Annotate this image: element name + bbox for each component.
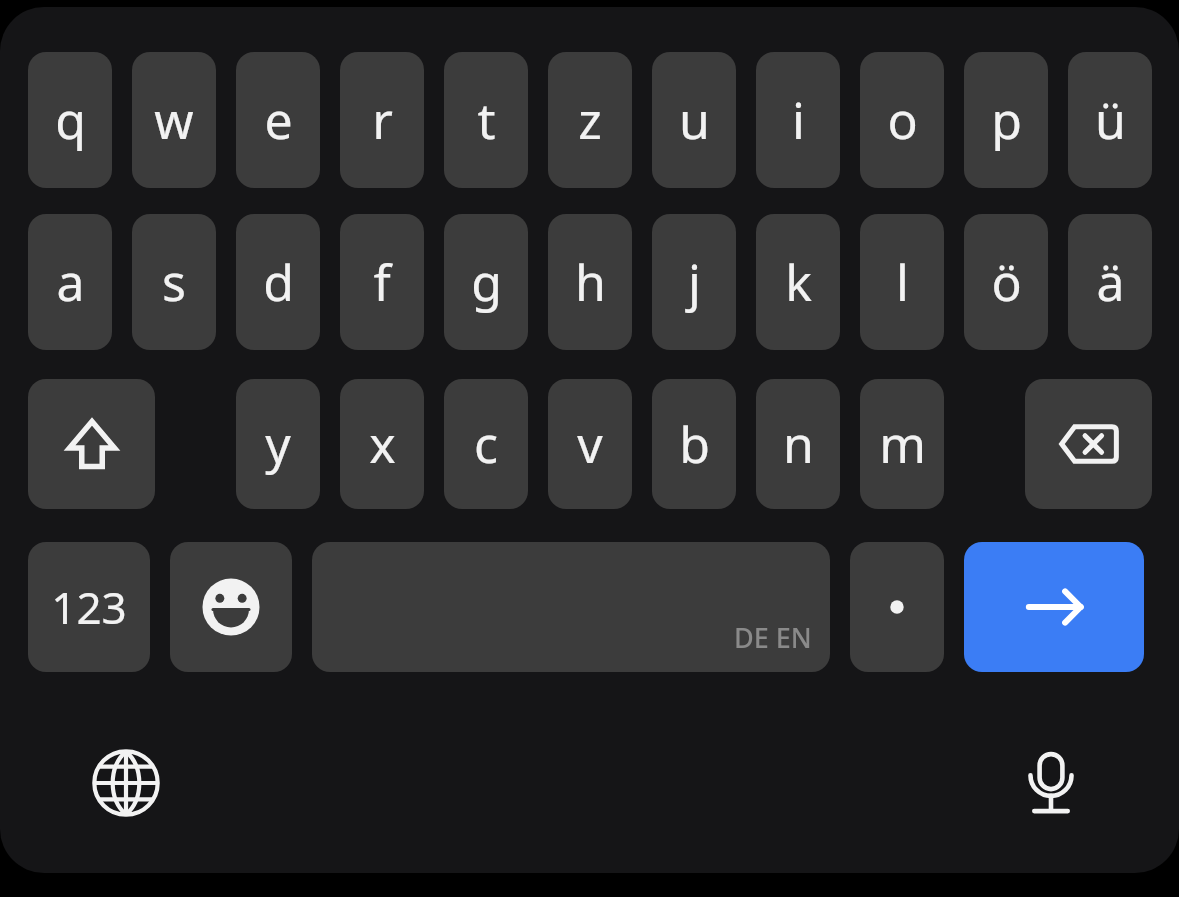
staticText: a	[56, 248, 85, 316]
button[interactable]: a	[28, 214, 112, 350]
button[interactable]: c	[444, 379, 528, 509]
button[interactable]: s	[132, 214, 216, 350]
button[interactable]: ä	[1068, 214, 1152, 350]
staticText: z	[578, 86, 602, 154]
staticText: x	[369, 410, 396, 478]
button[interactable]: Period	[850, 542, 944, 672]
staticText: i	[792, 86, 805, 154]
staticText: 123	[51, 577, 127, 637]
staticText: h	[575, 248, 606, 316]
button[interactable]: m	[860, 379, 944, 509]
button[interactable]: t	[444, 52, 528, 188]
button[interactable]: ö	[964, 214, 1048, 350]
staticText: d	[263, 248, 294, 316]
button[interactable]: z	[548, 52, 632, 188]
button[interactable]: Change language	[90, 747, 162, 819]
staticText: u	[679, 86, 710, 154]
button[interactable]: f	[340, 214, 424, 350]
button[interactable]: j	[652, 214, 736, 350]
button[interactable]: Voice input	[1013, 745, 1089, 821]
staticText: c	[474, 410, 498, 478]
button[interactable]: p	[964, 52, 1048, 188]
button[interactable]: b	[652, 379, 736, 509]
staticText: n	[783, 410, 814, 478]
staticText: y	[265, 410, 291, 478]
staticText: DE EN	[734, 619, 812, 656]
button[interactable]: e	[236, 52, 320, 188]
staticText: s	[162, 248, 186, 316]
button[interactable]: Enter	[964, 542, 1144, 672]
staticText: j	[688, 248, 701, 316]
staticText: q	[55, 86, 86, 154]
staticText: f	[373, 248, 391, 316]
staticText: v	[577, 410, 603, 478]
button[interactable]: u	[652, 52, 736, 188]
staticText: p	[991, 86, 1022, 154]
staticText: k	[785, 248, 812, 316]
button[interactable]: d	[236, 214, 320, 350]
button[interactable]: q	[28, 52, 112, 188]
staticText: b	[679, 410, 710, 478]
button[interactable]: y	[236, 379, 320, 509]
staticText: o	[887, 86, 918, 154]
staticText: l	[896, 248, 909, 316]
button[interactable]: x	[340, 379, 424, 509]
button[interactable]: ü	[1068, 52, 1152, 188]
button[interactable]: o	[860, 52, 944, 188]
button[interactable]: k	[756, 214, 840, 350]
button[interactable]: n	[756, 379, 840, 509]
button[interactable]: Space	[312, 542, 830, 672]
staticText: m	[879, 410, 926, 478]
staticText: t	[477, 86, 496, 154]
staticText: g	[471, 248, 502, 316]
button[interactable]: v	[548, 379, 632, 509]
staticText: e	[264, 86, 293, 154]
button[interactable]: w	[132, 52, 216, 188]
button[interactable]: l	[860, 214, 944, 350]
button[interactable]: Shift	[28, 379, 155, 509]
staticText: ä	[1096, 248, 1125, 316]
button[interactable]: r	[340, 52, 424, 188]
staticText: ü	[1095, 86, 1126, 154]
staticText: w	[154, 86, 194, 154]
button[interactable]: h	[548, 214, 632, 350]
staticText: ö	[991, 248, 1022, 316]
button[interactable]: 123	[28, 542, 150, 672]
button[interactable]: Backspace	[1025, 379, 1152, 509]
button[interactable]: i	[756, 52, 840, 188]
button[interactable]: Emoji	[170, 542, 292, 672]
button[interactable]: g	[444, 214, 528, 350]
staticText: r	[372, 86, 393, 154]
